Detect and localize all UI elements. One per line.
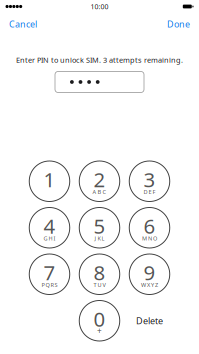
staticText: Done — [167, 18, 190, 30]
staticText: 4 — [43, 212, 55, 240]
button[interactable]: 5 — [74, 204, 124, 251]
button[interactable]: 9 — [124, 251, 174, 297]
button[interactable]: 4 — [24, 204, 74, 251]
button[interactable]: 7 — [24, 251, 74, 297]
button[interactable]: 8 — [74, 251, 124, 297]
staticText: M N O — [142, 234, 157, 242]
staticText: Enter PIN to unlock SIM. 3 attempts rema… — [16, 55, 183, 65]
button[interactable]: Delete — [124, 297, 174, 344]
staticText: J K L — [94, 234, 104, 242]
button[interactable]: 0 — [74, 297, 124, 344]
staticText: P Q R S — [41, 281, 57, 288]
staticText: 8 — [93, 258, 105, 286]
staticText: 0 — [93, 305, 105, 333]
button[interactable]: Done — [160, 13, 195, 35]
staticText: 2 — [93, 165, 105, 193]
staticText: G H I — [43, 234, 55, 242]
staticText: A B C — [92, 188, 106, 195]
button[interactable]: 3 — [124, 158, 174, 204]
button[interactable]: 1 — [24, 158, 74, 204]
button[interactable]: 2 — [74, 158, 124, 204]
staticText: 7 — [43, 258, 55, 286]
staticText: 10:00 — [90, 2, 108, 11]
button[interactable]: Cancel — [4, 13, 44, 35]
staticText: 1 — [43, 165, 55, 193]
staticText: 6 — [143, 212, 155, 240]
staticText: 3 — [143, 165, 155, 193]
staticText: W X Y Z — [141, 281, 158, 288]
staticText: Delete — [136, 315, 163, 327]
staticText: 5 — [93, 212, 105, 240]
staticText: Cancel — [9, 18, 37, 30]
staticText: D E F — [143, 188, 155, 195]
staticText: 9 — [143, 258, 155, 286]
staticText: + — [97, 325, 102, 336]
staticText: T U V — [93, 281, 105, 288]
button[interactable]: 6 — [124, 204, 174, 251]
